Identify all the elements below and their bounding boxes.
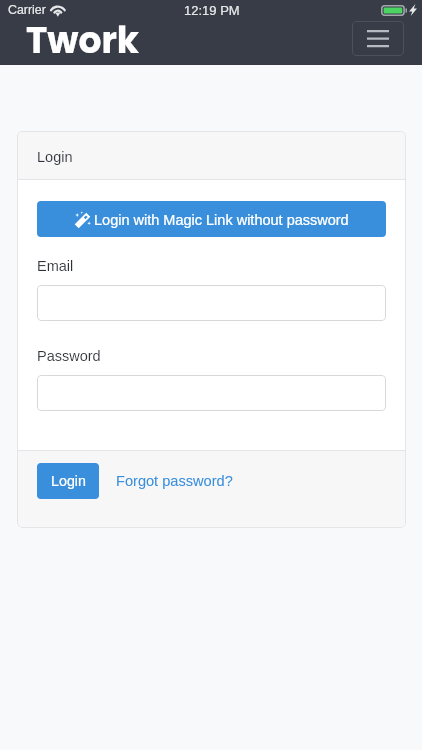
- staticText: Twork: [26, 15, 140, 65]
- button[interactable]: Open menu: [352, 21, 404, 56]
- staticText: Login: [37, 149, 73, 165]
- button[interactable]: Text field: [37, 375, 386, 411]
- button[interactable]: Text field: [37, 285, 386, 321]
- staticText: Login with Magic Link without password: [94, 212, 349, 228]
- staticText: Forgot password?: [116, 473, 233, 489]
- staticText: Email: [37, 258, 74, 274]
- staticText: 12:19 PM: [184, 3, 240, 18]
- button[interactable]: Login: [37, 463, 99, 499]
- staticText: Login: [51, 473, 86, 489]
- staticText: Password: [37, 348, 101, 364]
- button[interactable]: Login with Magic Link without password: [37, 201, 386, 237]
- staticText: Carrier: [8, 3, 46, 17]
- button[interactable]: Forgot password?: [116, 463, 233, 499]
